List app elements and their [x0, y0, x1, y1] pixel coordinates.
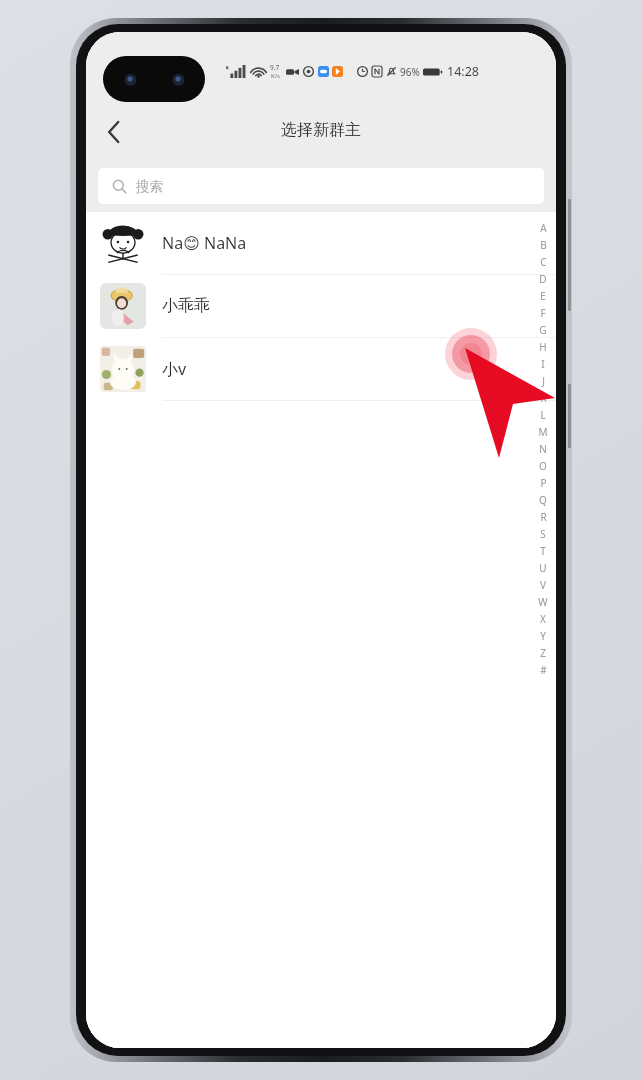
staticText: 96% [400, 65, 420, 79]
staticText: D [539, 272, 547, 286]
button[interactable]: 小乖乖 [86, 275, 556, 338]
staticText: Z [540, 646, 546, 660]
staticText: K/s [271, 72, 280, 80]
staticText: A [540, 221, 547, 235]
staticText: E [540, 289, 546, 303]
staticText: R [540, 510, 547, 524]
button[interactable]: 搜索 [98, 168, 544, 204]
staticText: Y [540, 629, 546, 643]
staticText: 9.7 [270, 63, 280, 72]
staticText: K [540, 391, 547, 405]
staticText: Q [539, 493, 547, 507]
staticText: H [539, 340, 547, 354]
staticText: Na😊 NaNa [162, 232, 247, 254]
staticText: N [539, 442, 547, 456]
button[interactable]: 字母索引 [534, 219, 552, 678]
staticText: X [540, 612, 546, 626]
staticText: M [538, 425, 548, 439]
staticText: 选择新群主 [281, 120, 361, 140]
staticText: G [539, 323, 547, 337]
staticText: # [540, 663, 547, 677]
staticText: S [540, 527, 546, 541]
staticText: 搜索 [136, 178, 163, 195]
button[interactable]: 返回 [92, 110, 136, 154]
staticText: T [540, 544, 546, 558]
staticText: O [539, 459, 547, 473]
staticText: U [539, 561, 547, 575]
button[interactable]: 小v [86, 338, 556, 401]
staticText: 小v [162, 358, 187, 380]
staticText: W [538, 595, 548, 609]
staticText: J [542, 374, 545, 388]
staticText: L [540, 408, 546, 422]
staticText: P [540, 476, 547, 490]
staticText: 小乖乖 [162, 296, 210, 316]
staticText: B [540, 238, 547, 252]
button[interactable]: Na😊 NaNa [86, 212, 556, 275]
staticText: V [540, 578, 546, 592]
staticText: I [541, 357, 545, 371]
staticText: C [540, 255, 547, 269]
staticText: 14:28 [447, 63, 479, 80]
staticText: F [540, 306, 546, 320]
